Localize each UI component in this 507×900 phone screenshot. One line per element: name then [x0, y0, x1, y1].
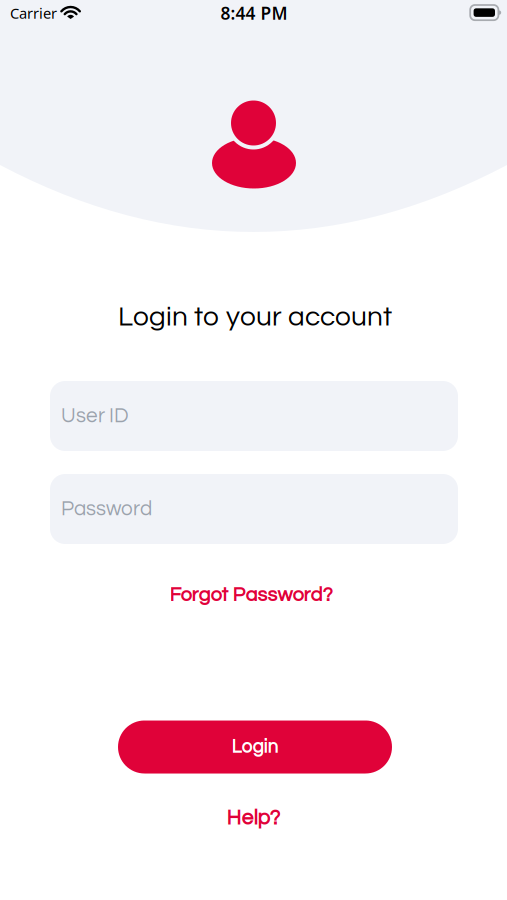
staticText: 8:44 PM — [220, 1, 287, 24]
staticText: Login — [231, 737, 278, 757]
staticText: Carrier — [10, 3, 57, 23]
staticText: User ID — [61, 405, 129, 427]
button[interactable]: User ID — [50, 381, 458, 451]
staticText: Login to your account — [118, 303, 392, 331]
staticText: Forgot Password? — [169, 585, 332, 605]
staticText: Password — [61, 498, 152, 520]
button[interactable]: Help? — [226, 807, 280, 829]
staticText: Help? — [226, 807, 280, 829]
button[interactable]: Password — [50, 474, 458, 544]
button[interactable]: Forgot Password? — [169, 585, 332, 605]
button[interactable]: Login — [118, 720, 392, 773]
